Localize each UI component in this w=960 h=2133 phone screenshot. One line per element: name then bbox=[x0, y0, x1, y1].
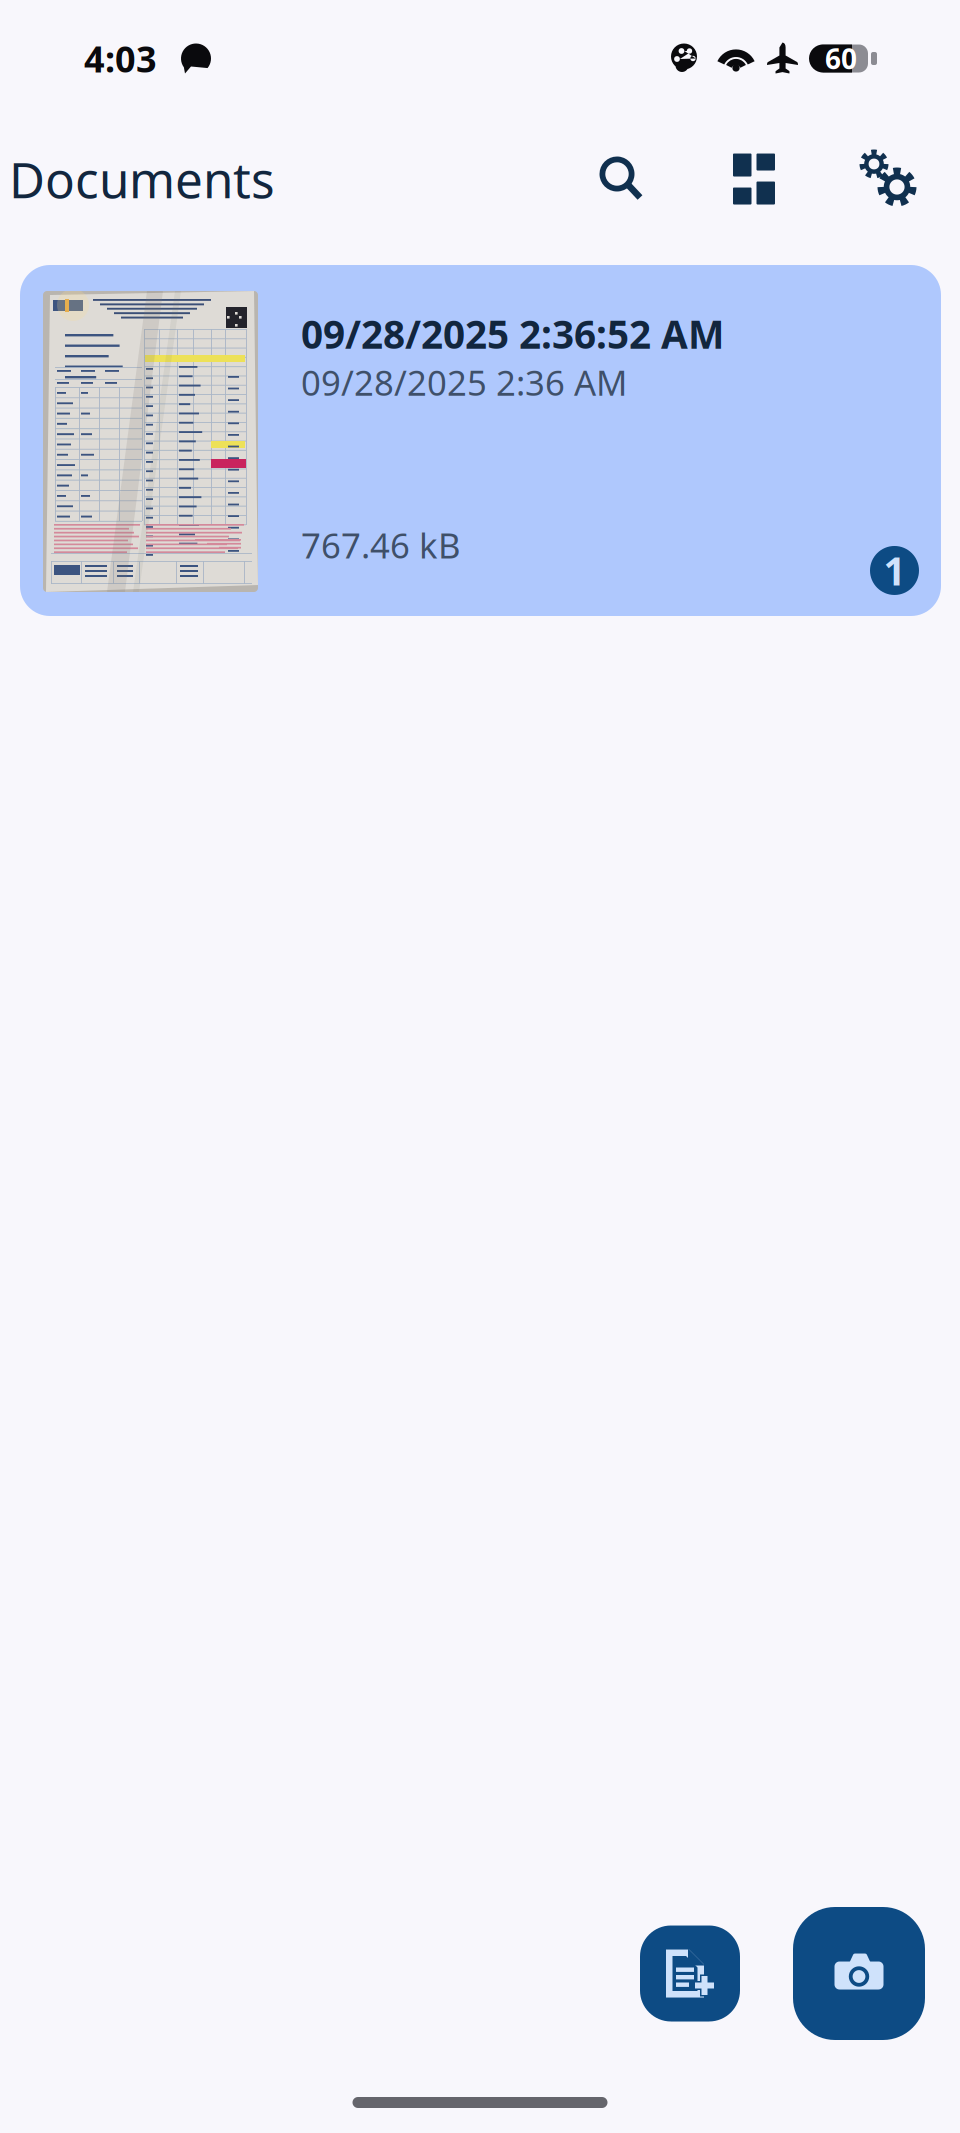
staticText: 09/28/2025 2:36:52 AM bbox=[301, 308, 724, 359]
button[interactable]: Search bbox=[578, 148, 640, 210]
staticText: 09/28/2025 2:36 AM bbox=[301, 359, 627, 405]
staticText: 4:03 bbox=[84, 35, 157, 82]
button[interactable]: Change layout bbox=[723, 148, 785, 210]
staticText: Documents bbox=[9, 146, 275, 212]
staticText: 767.46 kB bbox=[301, 522, 461, 568]
button[interactable]: Settings bbox=[858, 148, 920, 210]
button[interactable]: 09/28/2025 2:36:52 AM bbox=[20, 265, 941, 616]
staticText: 1 bbox=[883, 545, 905, 596]
button[interactable]: Import document bbox=[640, 1925, 740, 2021]
button[interactable]: Scan with camera bbox=[793, 1907, 925, 2040]
staticText: 60 bbox=[825, 40, 857, 77]
